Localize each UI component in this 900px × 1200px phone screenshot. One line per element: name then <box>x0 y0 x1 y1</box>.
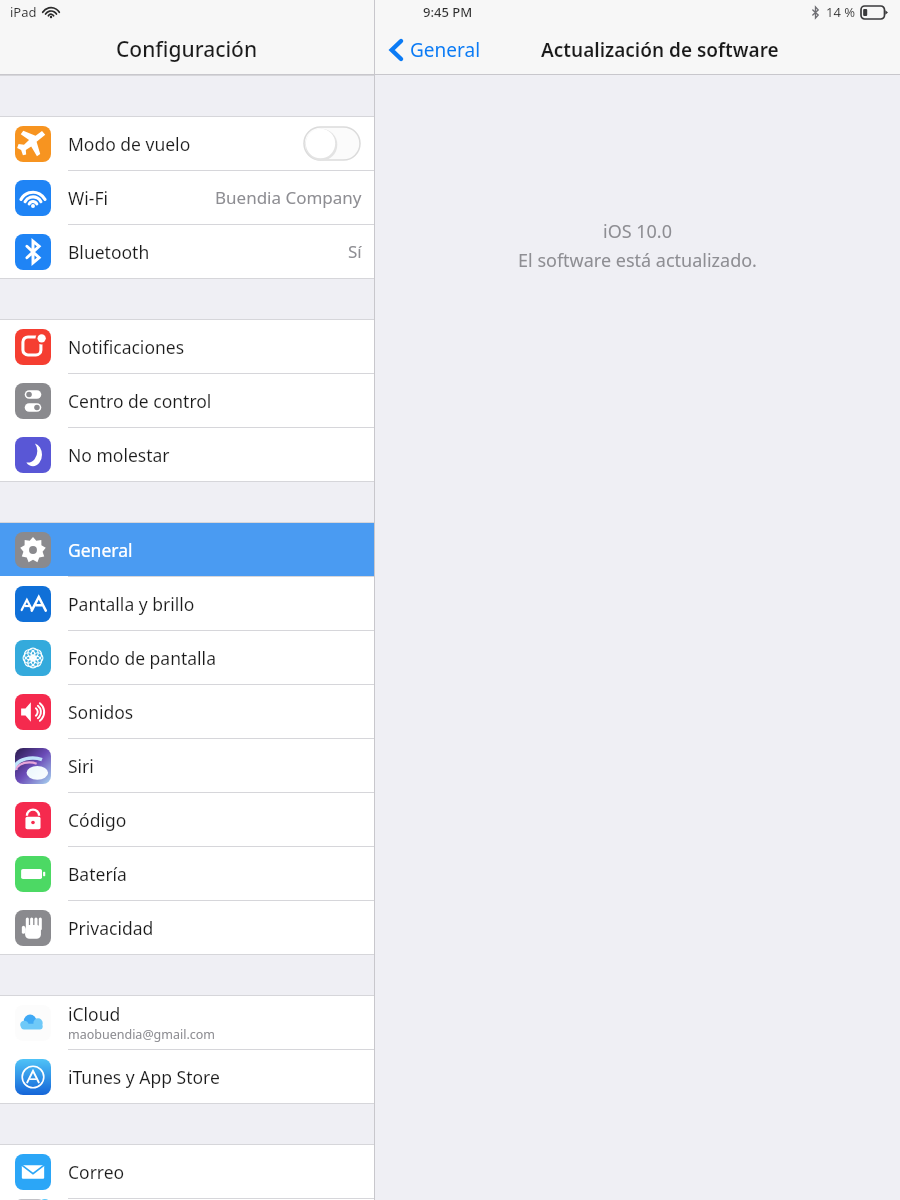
button[interactable]: Sonidos <box>0 685 374 738</box>
staticText: Correo <box>68 1160 125 1184</box>
staticText: Modo de vuelo <box>68 132 191 156</box>
staticText: iOS 10.0 <box>603 219 672 244</box>
button[interactable]: Notificaciones <box>0 320 374 373</box>
staticText: Notificaciones <box>68 335 185 359</box>
staticText: Privacidad <box>68 916 154 940</box>
staticText: Batería <box>68 862 127 886</box>
staticText: General <box>68 538 133 562</box>
button[interactable]: Centro de control <box>0 374 374 427</box>
staticText: 9:45 PM <box>423 3 473 21</box>
staticText: Wi-Fi <box>68 186 109 210</box>
staticText: General <box>410 37 481 63</box>
staticText: iTunes y App Store <box>68 1065 220 1089</box>
button[interactable]: Contactos <box>0 1199 374 1200</box>
button[interactable]: iCloud <box>0 996 374 1049</box>
button[interactable]: Fondo de pantalla <box>0 631 374 684</box>
staticText: iPad <box>10 3 37 21</box>
staticText: Bluetooth <box>68 240 150 264</box>
staticText: Sonidos <box>68 700 134 724</box>
staticText: Actualización de software <box>541 37 779 63</box>
button[interactable]: General <box>0 523 374 576</box>
staticText: Buendia Company <box>215 186 362 209</box>
button[interactable]: Wi-Fi <box>0 171 374 224</box>
button[interactable]: Modo de vuelo <box>0 117 374 170</box>
staticText: Sí <box>348 240 362 263</box>
button[interactable]: No molestar <box>0 428 374 481</box>
staticText: Pantalla y brillo <box>68 592 195 616</box>
button[interactable]: Siri <box>0 739 374 792</box>
button[interactable]: iTunes y App Store <box>0 1050 374 1103</box>
button[interactable]: Correo <box>0 1145 374 1198</box>
button[interactable]: Bluetooth <box>0 225 374 278</box>
staticText: Centro de control <box>68 389 212 413</box>
staticText: Fondo de pantalla <box>68 646 216 670</box>
staticText: maobuendia@gmail.com <box>68 1026 216 1043</box>
staticText: Código <box>68 808 127 832</box>
staticText: iCloud <box>68 1002 121 1026</box>
button[interactable]: Pantalla y brillo <box>0 577 374 630</box>
button[interactable]: Código <box>0 793 374 846</box>
button[interactable]: General <box>387 32 484 68</box>
button[interactable]: Activar modo de vuelo <box>304 127 360 160</box>
staticText: No molestar <box>68 443 170 467</box>
staticText: 14 % <box>826 3 856 21</box>
button[interactable]: Batería <box>0 847 374 900</box>
button[interactable]: Privacidad <box>0 901 374 954</box>
staticText: El software está actualizado. <box>518 248 757 273</box>
staticText: Siri <box>68 754 94 778</box>
staticText: Configuración <box>116 35 258 64</box>
